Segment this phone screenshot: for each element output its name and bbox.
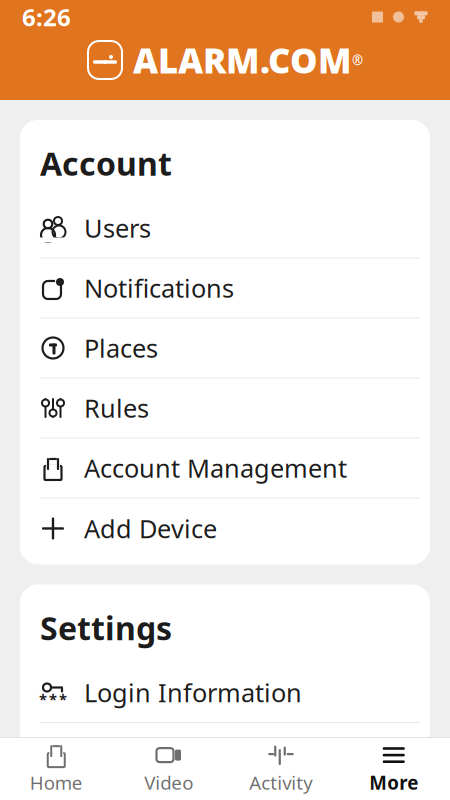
- staticText: ®: [352, 51, 363, 69]
- staticText: Login Information: [84, 676, 302, 709]
- staticText: Activity: [249, 770, 313, 795]
- staticText: *: [49, 689, 57, 709]
- staticText: *: [59, 689, 67, 709]
- staticText: Settings: [40, 606, 172, 649]
- staticText: Notifications: [84, 271, 234, 305]
- staticText: Add Device: [84, 512, 217, 545]
- staticText: Account: [40, 142, 172, 184]
- button[interactable]: *: [20, 663, 430, 723]
- button[interactable]: Places: [20, 318, 430, 378]
- staticText: 6:26: [22, 1, 71, 33]
- button[interactable]: Rules: [20, 378, 430, 438]
- staticText: Video: [144, 770, 193, 795]
- staticText: Home: [30, 770, 83, 795]
- staticText: App Settings: [84, 736, 236, 770]
- staticText: Rules: [84, 391, 149, 425]
- button[interactable]: App Settings: [20, 723, 430, 783]
- button[interactable]: Add Device: [20, 498, 430, 558]
- button[interactable]: Users: [20, 198, 430, 258]
- staticText: ALARM.COM: [133, 37, 352, 83]
- button[interactable]: Home: [0, 738, 112, 800]
- button[interactable]: Notifications: [20, 258, 430, 318]
- staticText: Account Management: [84, 451, 347, 485]
- staticText: *: [39, 689, 47, 709]
- button[interactable]: More: [337, 738, 450, 800]
- staticText: Places: [84, 331, 158, 365]
- button[interactable]: Video: [112, 738, 225, 800]
- staticText: More: [369, 770, 418, 795]
- button[interactable]: Activity: [225, 738, 337, 800]
- staticText: Users: [84, 211, 151, 245]
- button[interactable]: Account Management: [20, 438, 430, 498]
